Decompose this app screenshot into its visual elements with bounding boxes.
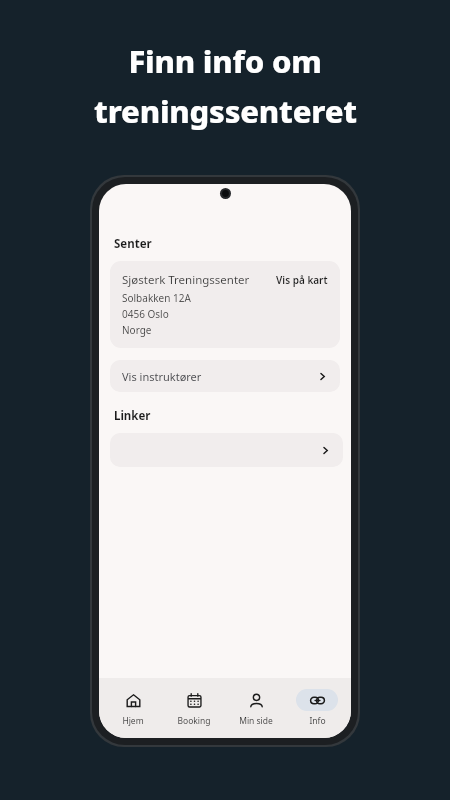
staticText: Sjøsterk Treningssenter: [122, 272, 250, 288]
staticText: Senter: [114, 236, 152, 252]
button[interactable]: Vis på kart: [270, 272, 328, 287]
staticText: Vis på kart: [276, 273, 328, 287]
button[interactable]: [110, 433, 343, 467]
staticText: Vis instruktører: [122, 369, 317, 384]
button[interactable]: Hjem: [105, 687, 161, 729]
staticText: 0456 Oslo: [122, 307, 169, 321]
staticText: Min side: [239, 715, 273, 727]
button[interactable]: Info: [289, 687, 345, 729]
button[interactable]: Sjøsterk Treningssenter: [110, 261, 340, 348]
button[interactable]: Min side: [228, 687, 284, 729]
staticText: Info: [309, 715, 326, 727]
staticText: Hjem: [122, 715, 144, 727]
button[interactable]: Booking: [166, 687, 222, 729]
staticText: Solbakken 12A: [122, 291, 191, 305]
button[interactable]: Vis instruktører: [110, 360, 340, 392]
staticText: Finn info om: [128, 40, 322, 82]
staticText: Linker: [114, 408, 151, 424]
staticText: Booking: [177, 715, 211, 727]
staticText: Norge: [122, 323, 152, 337]
staticText: treningssenteret: [94, 90, 357, 132]
